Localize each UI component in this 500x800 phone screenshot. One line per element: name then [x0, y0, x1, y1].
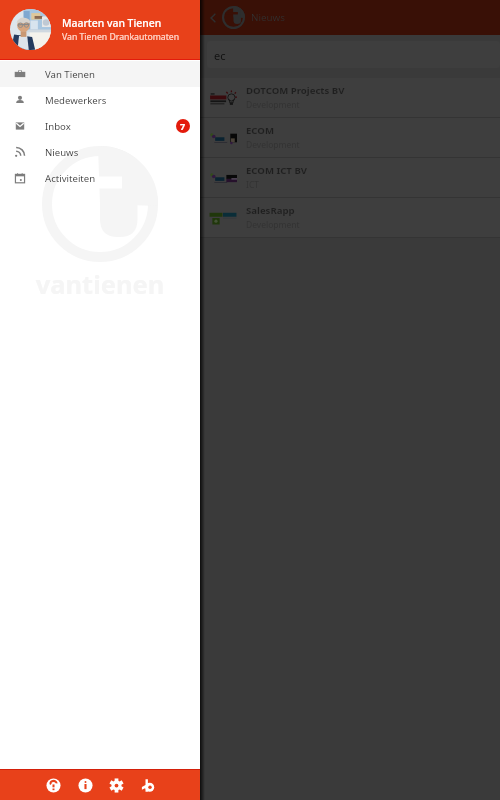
staticText: Van Tienen Drankautomaten: [62, 31, 180, 43]
button[interactable]: Settings: [108, 777, 124, 793]
button[interactable]: DOTCOM Projects BV: [0, 78, 500, 117]
button[interactable]: Inbox: [0, 113, 200, 139]
staticText: ECOM: [246, 124, 274, 137]
button[interactable]: Van Tienen: [0, 61, 200, 87]
button[interactable]: ECOM ICT BV: [0, 158, 500, 197]
button[interactable]: SalesRapp: [0, 198, 500, 237]
staticText: Development: [246, 139, 300, 151]
button[interactable]: Medewerkers: [0, 87, 200, 113]
staticText: Maarten van Tienen: [62, 16, 162, 30]
staticText: vantienen: [0, 267, 200, 302]
staticText: Inbox: [45, 120, 71, 133]
staticText: Nieuws: [251, 11, 285, 24]
button[interactable]: Brand: [140, 777, 156, 793]
staticText: Nieuws: [45, 146, 79, 159]
staticText: ECOM ICT BV: [246, 164, 308, 177]
button[interactable]: Back: [204, 9, 222, 27]
staticText: SalesRapp: [246, 204, 295, 217]
staticText: Medewerkers: [45, 94, 107, 107]
staticText: DOTCOM Projects BV: [246, 84, 345, 97]
button[interactable]: Help: [45, 777, 61, 793]
staticText: Development: [246, 219, 300, 231]
button[interactable]: Nieuws: [0, 139, 200, 165]
staticText: Activiteiten: [45, 172, 96, 185]
staticText: Development: [246, 99, 300, 111]
button[interactable]: ECOM: [0, 118, 500, 157]
staticText: ec: [214, 48, 226, 63]
button[interactable]: Activiteiten: [0, 165, 200, 191]
staticText: 7: [180, 120, 186, 132]
button[interactable]: Info: [77, 777, 93, 793]
staticText: Van Tienen: [45, 68, 95, 81]
staticText: ICT: [246, 179, 259, 191]
